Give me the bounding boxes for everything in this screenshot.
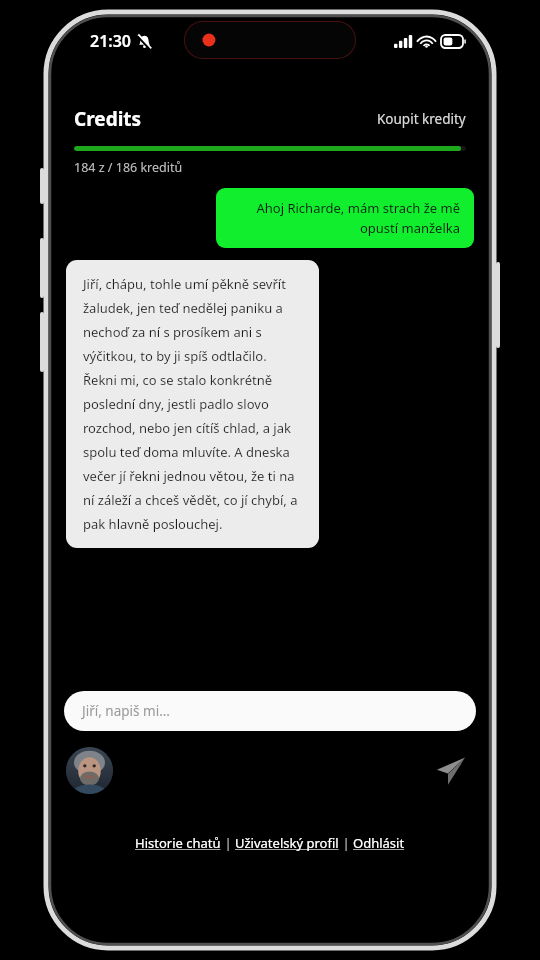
- staticText: |: [339, 834, 353, 852]
- button[interactable]: Jiří, chápu, tohle umí pěkně sevřít žalu…: [66, 260, 319, 548]
- button[interactable]: Historie chatů: [135, 834, 221, 852]
- button[interactable]: Send: [430, 750, 472, 792]
- staticText: Ahoj Richarde, mám strach že mě opustí m…: [230, 199, 460, 237]
- staticText: Historie chatů: [135, 834, 221, 852]
- staticText: Credits: [74, 106, 142, 132]
- button[interactable]: Profile photo: [66, 747, 113, 794]
- staticText: Koupit kredity: [377, 110, 466, 128]
- staticText: Jiří, chápu, tohle umí pěkně sevřít žalu…: [83, 275, 302, 533]
- button[interactable]: Koupit kredity: [377, 110, 466, 128]
- staticText: 21:30: [90, 30, 132, 52]
- button[interactable]: Uživatelský profil: [235, 834, 339, 852]
- staticText: Odhlásit: [353, 834, 405, 852]
- button[interactable]: Odhlásit: [353, 834, 405, 852]
- staticText: 184 z / 186 kreditů: [74, 159, 183, 176]
- button[interactable]: Jiří, napiš mi...: [64, 691, 476, 731]
- staticText: |: [221, 834, 235, 852]
- staticText: Jiří, napiš mi...: [82, 702, 170, 720]
- button[interactable]: Ahoj Richarde, mám strach že mě opustí m…: [216, 188, 474, 248]
- staticText: Uživatelský profil: [235, 834, 339, 852]
